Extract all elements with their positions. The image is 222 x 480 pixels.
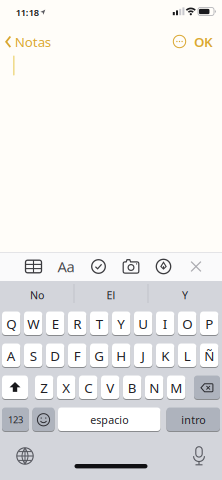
staticText: 123 xyxy=(8,414,23,426)
button[interactable]: T xyxy=(90,311,108,336)
staticText: Z xyxy=(40,379,48,397)
staticText: F xyxy=(74,347,81,365)
button[interactable]: M xyxy=(167,375,185,400)
staticText: El xyxy=(106,288,115,302)
staticText: Y xyxy=(117,315,125,333)
staticText: E xyxy=(52,315,59,333)
button[interactable] xyxy=(151,253,175,279)
button[interactable] xyxy=(32,407,54,432)
staticText: G xyxy=(94,347,104,365)
staticText: B xyxy=(128,379,137,397)
button[interactable]: 123 xyxy=(2,407,29,432)
button[interactable]: J xyxy=(134,343,152,368)
button[interactable]: U xyxy=(134,311,152,336)
staticText: P xyxy=(205,315,213,333)
button[interactable]: R xyxy=(68,311,86,336)
button[interactable]: V xyxy=(101,375,119,400)
button[interactable]: S xyxy=(24,343,42,368)
button[interactable]: A xyxy=(2,343,20,368)
button[interactable] xyxy=(169,31,189,51)
button[interactable]: espacio xyxy=(58,407,160,432)
button[interactable]: No xyxy=(2,285,72,305)
staticText: S xyxy=(30,347,37,365)
button[interactable]: W xyxy=(24,311,42,336)
staticText: espacio xyxy=(90,413,128,427)
button[interactable]: intro xyxy=(166,407,220,432)
button[interactable]: Y xyxy=(150,285,220,305)
button[interactable]: Q xyxy=(2,311,20,336)
button[interactable]: N xyxy=(145,375,163,400)
button[interactable]: D xyxy=(46,343,64,368)
staticText: T xyxy=(96,315,103,333)
button[interactable]: OK xyxy=(190,31,216,53)
staticText: L xyxy=(184,347,191,365)
button[interactable] xyxy=(14,445,36,467)
button[interactable] xyxy=(86,253,110,279)
staticText: Notas xyxy=(15,33,51,51)
staticText: V xyxy=(106,379,114,397)
button[interactable]: O xyxy=(178,311,196,336)
staticText: D xyxy=(50,347,60,365)
button[interactable] xyxy=(186,256,206,276)
button[interactable]: El xyxy=(76,285,146,305)
button[interactable] xyxy=(189,444,209,466)
button[interactable] xyxy=(21,253,45,279)
staticText: M xyxy=(170,379,182,397)
staticText: intro xyxy=(181,413,205,427)
button[interactable]: H xyxy=(112,343,130,368)
staticText: Y xyxy=(182,288,188,302)
button[interactable]: C xyxy=(79,375,97,400)
staticText: W xyxy=(27,315,39,333)
staticText: J xyxy=(141,347,145,365)
staticText: OK xyxy=(194,33,213,51)
staticText: H xyxy=(116,347,126,365)
button[interactable]: E xyxy=(46,311,64,336)
staticText: K xyxy=(161,347,169,365)
button[interactable]: I xyxy=(156,311,174,336)
staticText: A xyxy=(7,347,16,365)
button[interactable]: G xyxy=(90,343,108,368)
staticText: R xyxy=(73,315,81,333)
button[interactable]: Ñ xyxy=(200,343,218,368)
button[interactable] xyxy=(194,375,220,400)
button[interactable]: L xyxy=(178,343,196,368)
button[interactable]: B xyxy=(123,375,141,400)
staticText: No xyxy=(30,288,44,302)
button[interactable]: Aa xyxy=(54,253,78,279)
staticText: I xyxy=(163,315,168,333)
staticText: C xyxy=(84,379,92,397)
staticText: Ñ xyxy=(204,347,214,365)
button[interactable]: X xyxy=(57,375,75,400)
staticText: O xyxy=(182,315,192,333)
button[interactable]: Y xyxy=(112,311,130,336)
staticText: Q xyxy=(6,315,16,333)
staticText: U xyxy=(138,315,148,333)
button[interactable] xyxy=(119,253,143,279)
button[interactable] xyxy=(2,375,28,400)
staticText: 11:18 xyxy=(16,6,39,19)
staticText: N xyxy=(149,379,159,397)
button[interactable]: F xyxy=(68,343,86,368)
button[interactable]: K xyxy=(156,343,174,368)
button[interactable]: P xyxy=(200,311,218,336)
staticText: Aa xyxy=(57,257,74,276)
button[interactable]: Notas xyxy=(5,30,51,54)
staticText: X xyxy=(62,379,70,397)
button[interactable]: Z xyxy=(35,375,53,400)
